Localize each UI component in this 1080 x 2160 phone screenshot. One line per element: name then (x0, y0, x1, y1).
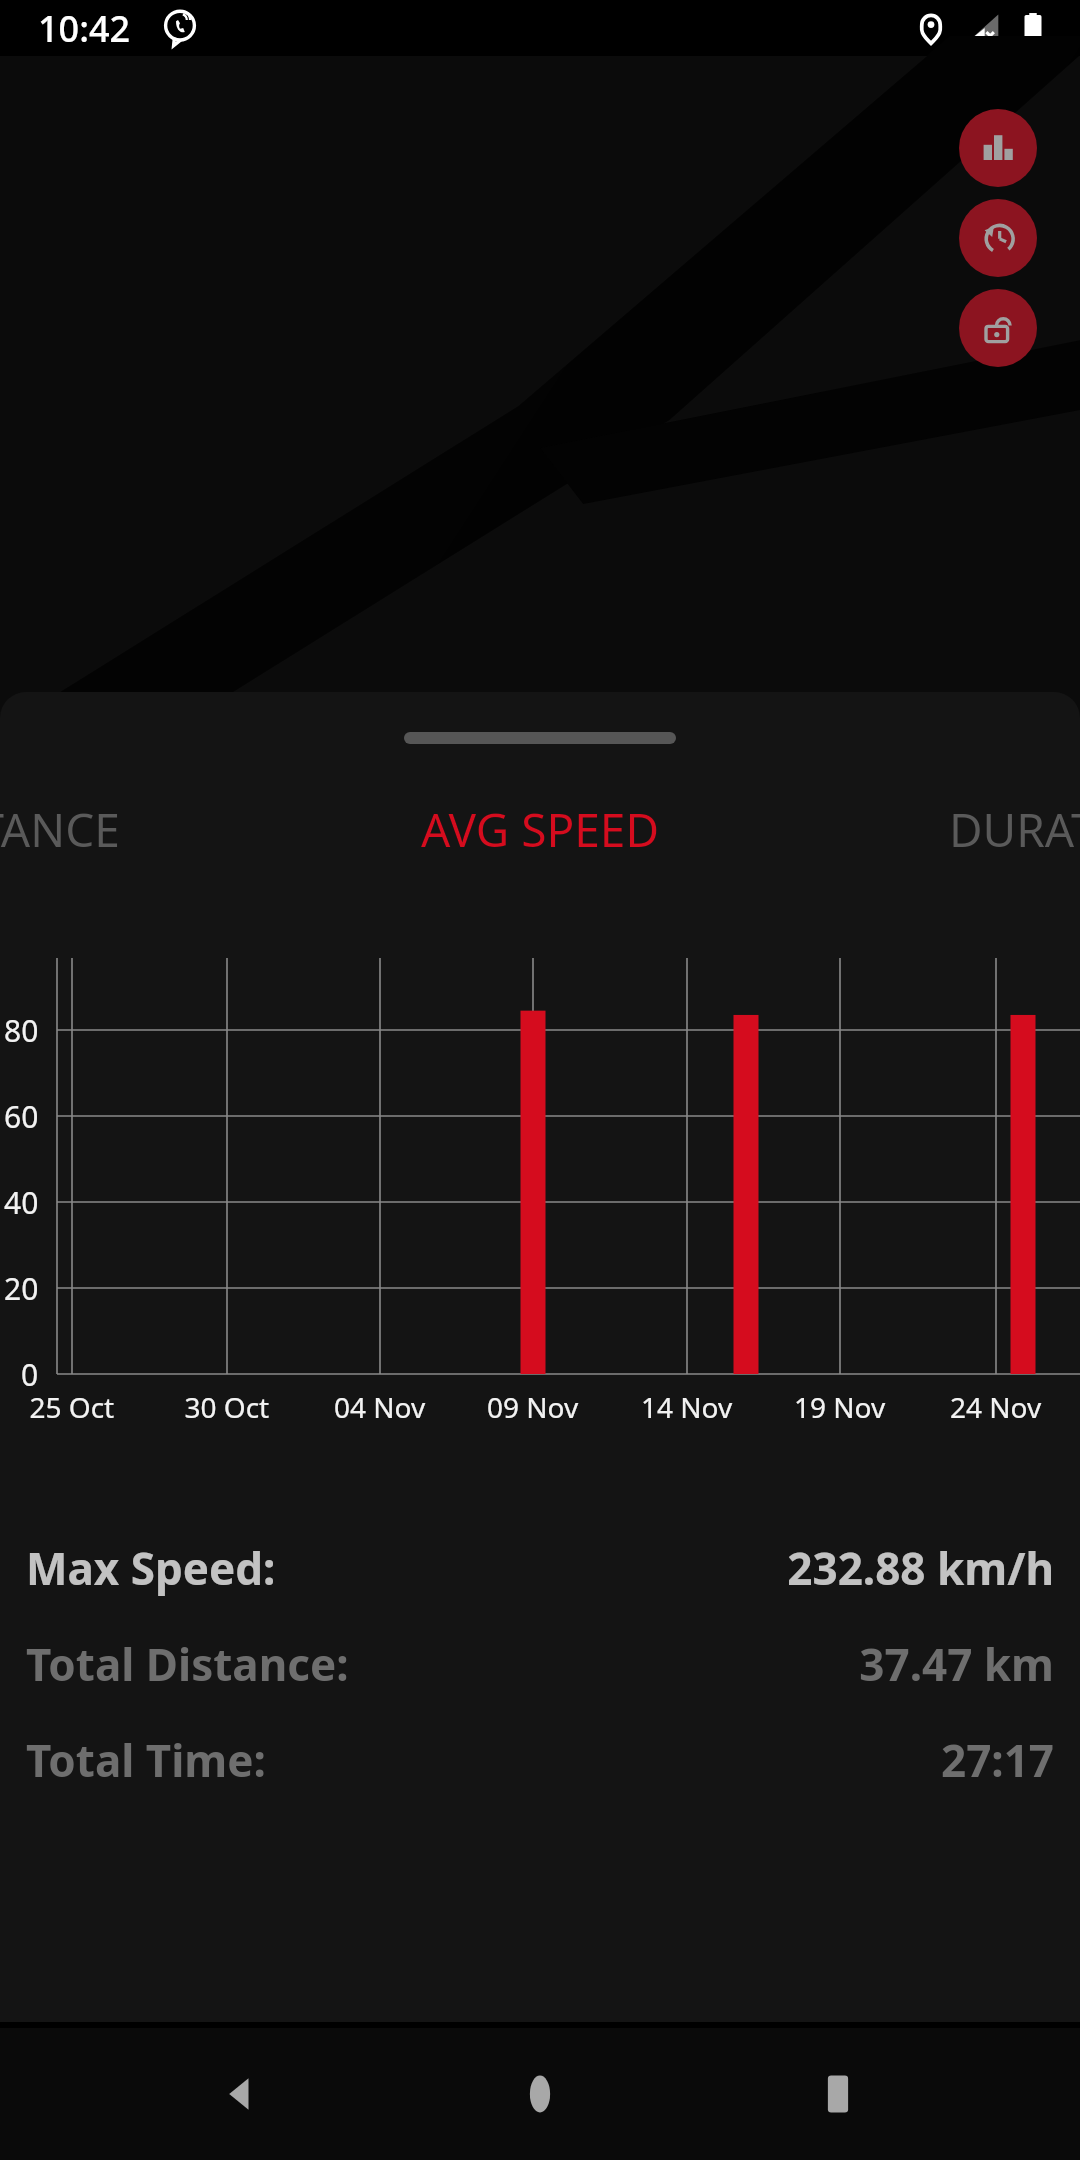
button[interactable]: History (959, 199, 1037, 277)
staticText: Total Time: (26, 1730, 266, 1790)
button[interactable]: Total Time: (0, 1724, 1080, 1796)
button[interactable]: DURATION (935, 790, 1080, 869)
staticText: Total Distance: (26, 1634, 349, 1694)
staticText: DISTANCE (0, 798, 120, 861)
staticText: 27:17 (940, 1730, 1054, 1790)
staticText: Max Speed: (26, 1538, 276, 1598)
staticText: DURATION (949, 798, 1080, 861)
button[interactable]: Recent apps (783, 2039, 893, 2149)
button[interactable]: DISTANCE (0, 790, 134, 869)
button[interactable]: Back (188, 2039, 298, 2149)
button[interactable] (404, 732, 676, 744)
button[interactable]: Statistics (959, 109, 1037, 187)
button[interactable]: Unlock screen (959, 289, 1037, 367)
button[interactable]: Home (485, 2039, 595, 2149)
button[interactable]: AVG SPEED (405, 790, 675, 869)
staticText: 232.88 km/h (787, 1538, 1054, 1598)
staticText: 37.47 km (859, 1634, 1054, 1694)
staticText: AVG SPEED (421, 798, 659, 861)
button[interactable]: Total Distance: (0, 1628, 1080, 1700)
staticText: 10:42 (38, 4, 131, 53)
button[interactable]: Max Speed: (0, 1532, 1080, 1604)
